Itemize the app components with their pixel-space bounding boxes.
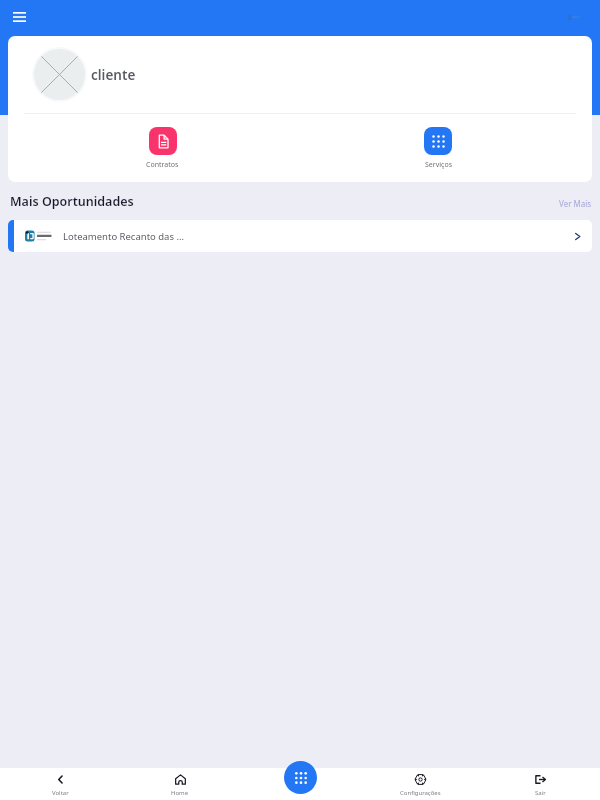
button[interactable]: Voltar <box>0 768 120 800</box>
staticText: Contratos <box>146 160 179 170</box>
staticText: Sair <box>535 789 546 797</box>
button[interactable]: Contratos <box>132 123 193 174</box>
button[interactable]: Home <box>120 768 240 800</box>
button[interactable]: Search <box>562 9 578 25</box>
button[interactable]: Sair <box>480 768 600 800</box>
staticText: Configurações <box>400 789 441 797</box>
button[interactable]: Menu <box>7 5 31 29</box>
button[interactable]: Apps <box>284 761 317 794</box>
staticText: Home <box>171 789 189 797</box>
staticText: Ver Mais <box>559 198 592 209</box>
staticText: Voltar <box>52 789 69 797</box>
staticText: Mais Oportunidades <box>10 193 134 210</box>
button[interactable]: Serviços <box>410 123 466 174</box>
button[interactable]: Configurações <box>360 768 480 800</box>
button[interactable]: Loteamento Recanto das ... <box>8 220 592 252</box>
staticText: cliente <box>91 66 136 84</box>
staticText: Serviços <box>425 160 452 170</box>
staticText: Loteamento Recanto das ... <box>63 230 185 243</box>
button[interactable]: Ver Mais <box>559 194 592 213</box>
